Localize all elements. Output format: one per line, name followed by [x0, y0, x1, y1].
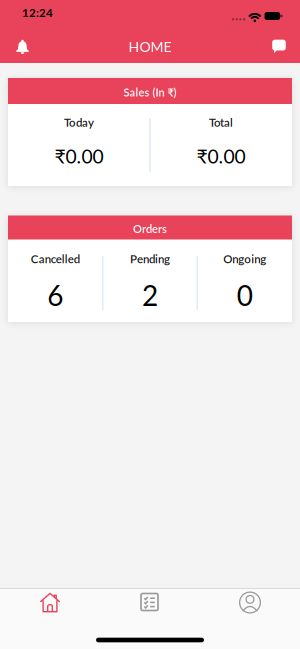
- staticText: Pending: [130, 252, 170, 266]
- staticText: 0: [237, 278, 253, 312]
- staticText: Orders: [133, 222, 167, 235]
- button[interactable]: Orders: [100, 588, 200, 637]
- staticText: Ongoing: [223, 252, 266, 266]
- staticText: Sales (In ₹): [123, 85, 176, 99]
- staticText: ₹0.00: [196, 144, 245, 167]
- button[interactable]: Messages: [259, 30, 299, 64]
- staticText: 2: [142, 278, 158, 312]
- button[interactable]: Profile: [200, 588, 300, 637]
- staticText: HOME: [128, 38, 171, 55]
- staticText: ₹0.00: [54, 144, 103, 167]
- staticText: Today: [64, 115, 94, 129]
- staticText: 6: [47, 278, 63, 312]
- button[interactable]: Home: [0, 588, 100, 637]
- button[interactable]: Notifications: [2, 30, 42, 64]
- staticText: Cancelled: [31, 252, 80, 266]
- staticText: 12:24: [22, 5, 53, 19]
- staticText: Total: [209, 115, 233, 129]
